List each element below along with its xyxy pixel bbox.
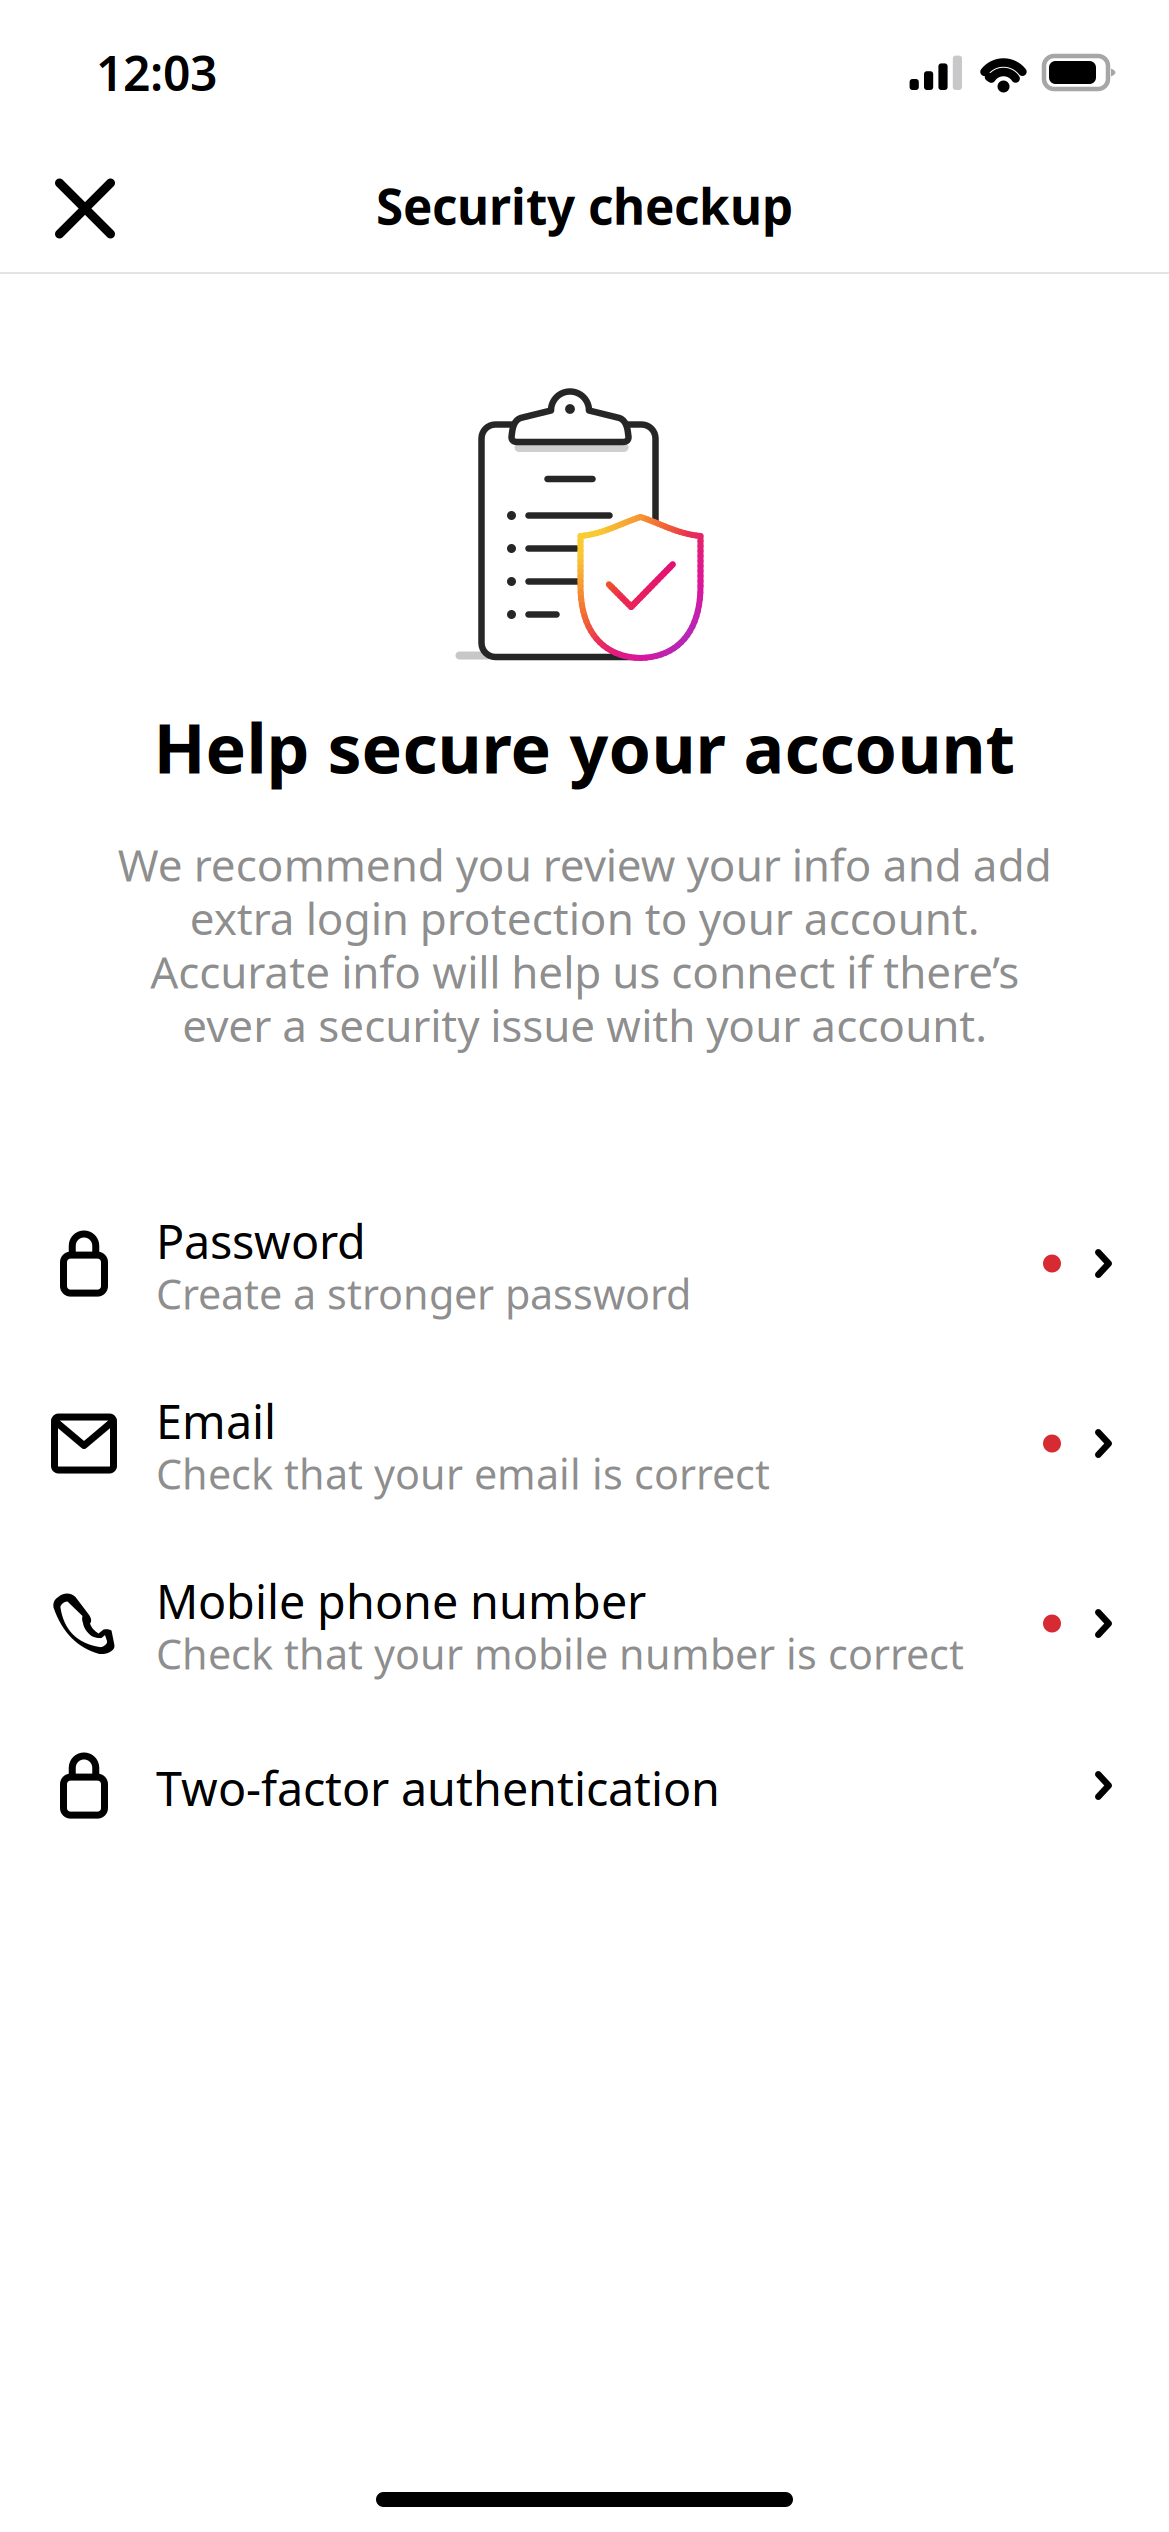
staticText: Help secure your account [153, 702, 1015, 792]
staticText: We recommend you review your info and ad… [117, 835, 1051, 1054]
staticText: Check that your mobile number is correct [156, 1626, 964, 1681]
staticText: Two-factor authentication [156, 1757, 720, 1819]
staticText: Security checkup [376, 173, 793, 238]
button[interactable]: Password [0, 1190, 1169, 1370]
staticText: Mobile phone number [156, 1570, 646, 1632]
staticText: 12:03 [96, 41, 217, 104]
staticText: Check that your email is correct [156, 1446, 770, 1501]
button[interactable]: Mobile phone number [0, 1550, 1169, 1737]
staticText: Password [156, 1210, 366, 1272]
button[interactable]: Two-factor authentication [0, 1737, 1169, 1887]
staticText: Email [156, 1390, 276, 1452]
button[interactable]: Email [0, 1370, 1169, 1550]
staticText: Create a stronger password [156, 1266, 691, 1321]
button[interactable]: Close [30, 153, 140, 263]
